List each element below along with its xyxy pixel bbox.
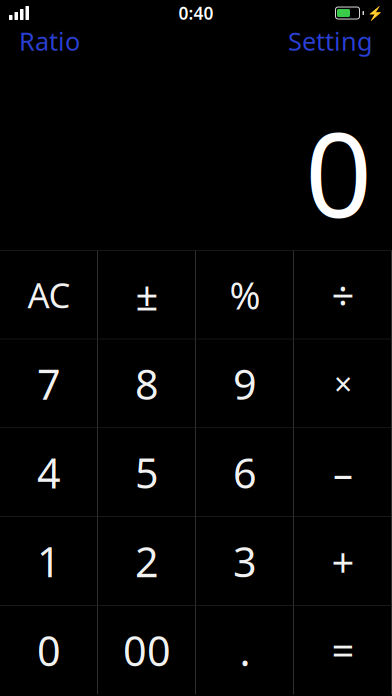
staticText: ± [135, 268, 158, 321]
button[interactable]: 2 [98, 517, 196, 606]
staticText: 3 [233, 534, 257, 589]
button[interactable]: = [294, 606, 392, 694]
staticText: 0 [37, 623, 61, 678]
staticText: Setting [288, 24, 373, 58]
staticText: Ratio [19, 24, 80, 58]
button[interactable]: Setting [286, 20, 375, 62]
button[interactable]: . [196, 606, 294, 694]
button[interactable]: ± [98, 250, 196, 339]
button[interactable]: 7 [0, 339, 98, 428]
button[interactable]: 1 [0, 517, 98, 606]
staticText: ÷ [331, 268, 354, 321]
staticText: 9 [233, 356, 257, 411]
button[interactable]: Ratio [17, 20, 82, 62]
staticText: 00 [123, 623, 171, 678]
button[interactable]: × [294, 339, 392, 428]
button[interactable]: 00 [98, 606, 196, 694]
button[interactable]: ÷ [294, 250, 392, 339]
staticText: % [229, 270, 260, 320]
staticText: 0:40 [178, 1, 213, 24]
button[interactable]: 9 [196, 339, 294, 428]
button[interactable]: 0 [0, 606, 98, 694]
staticText: AC [27, 272, 70, 318]
button[interactable]: 5 [98, 428, 196, 517]
staticText: 4 [37, 445, 61, 500]
staticText: . [239, 623, 250, 678]
staticText: 6 [233, 445, 257, 500]
button[interactable]: AC [0, 250, 98, 339]
button[interactable]: 8 [98, 339, 196, 428]
button[interactable]: 6 [196, 428, 294, 517]
staticText: + [331, 535, 354, 588]
button[interactable]: 3 [196, 517, 294, 606]
button[interactable]: – [294, 428, 392, 517]
staticText: – [333, 446, 353, 499]
staticText: 2 [135, 534, 159, 589]
staticText: 8 [135, 356, 159, 411]
staticText: 5 [135, 445, 159, 500]
staticText: ⚡ [367, 5, 384, 21]
staticText: 1 [37, 534, 61, 589]
staticText: = [331, 623, 354, 677]
button[interactable]: + [294, 517, 392, 606]
staticText: 0 [305, 94, 372, 250]
button[interactable]: 4 [0, 428, 98, 517]
staticText: × [334, 362, 352, 405]
staticText: 7 [37, 356, 61, 411]
button[interactable]: % [196, 250, 294, 339]
